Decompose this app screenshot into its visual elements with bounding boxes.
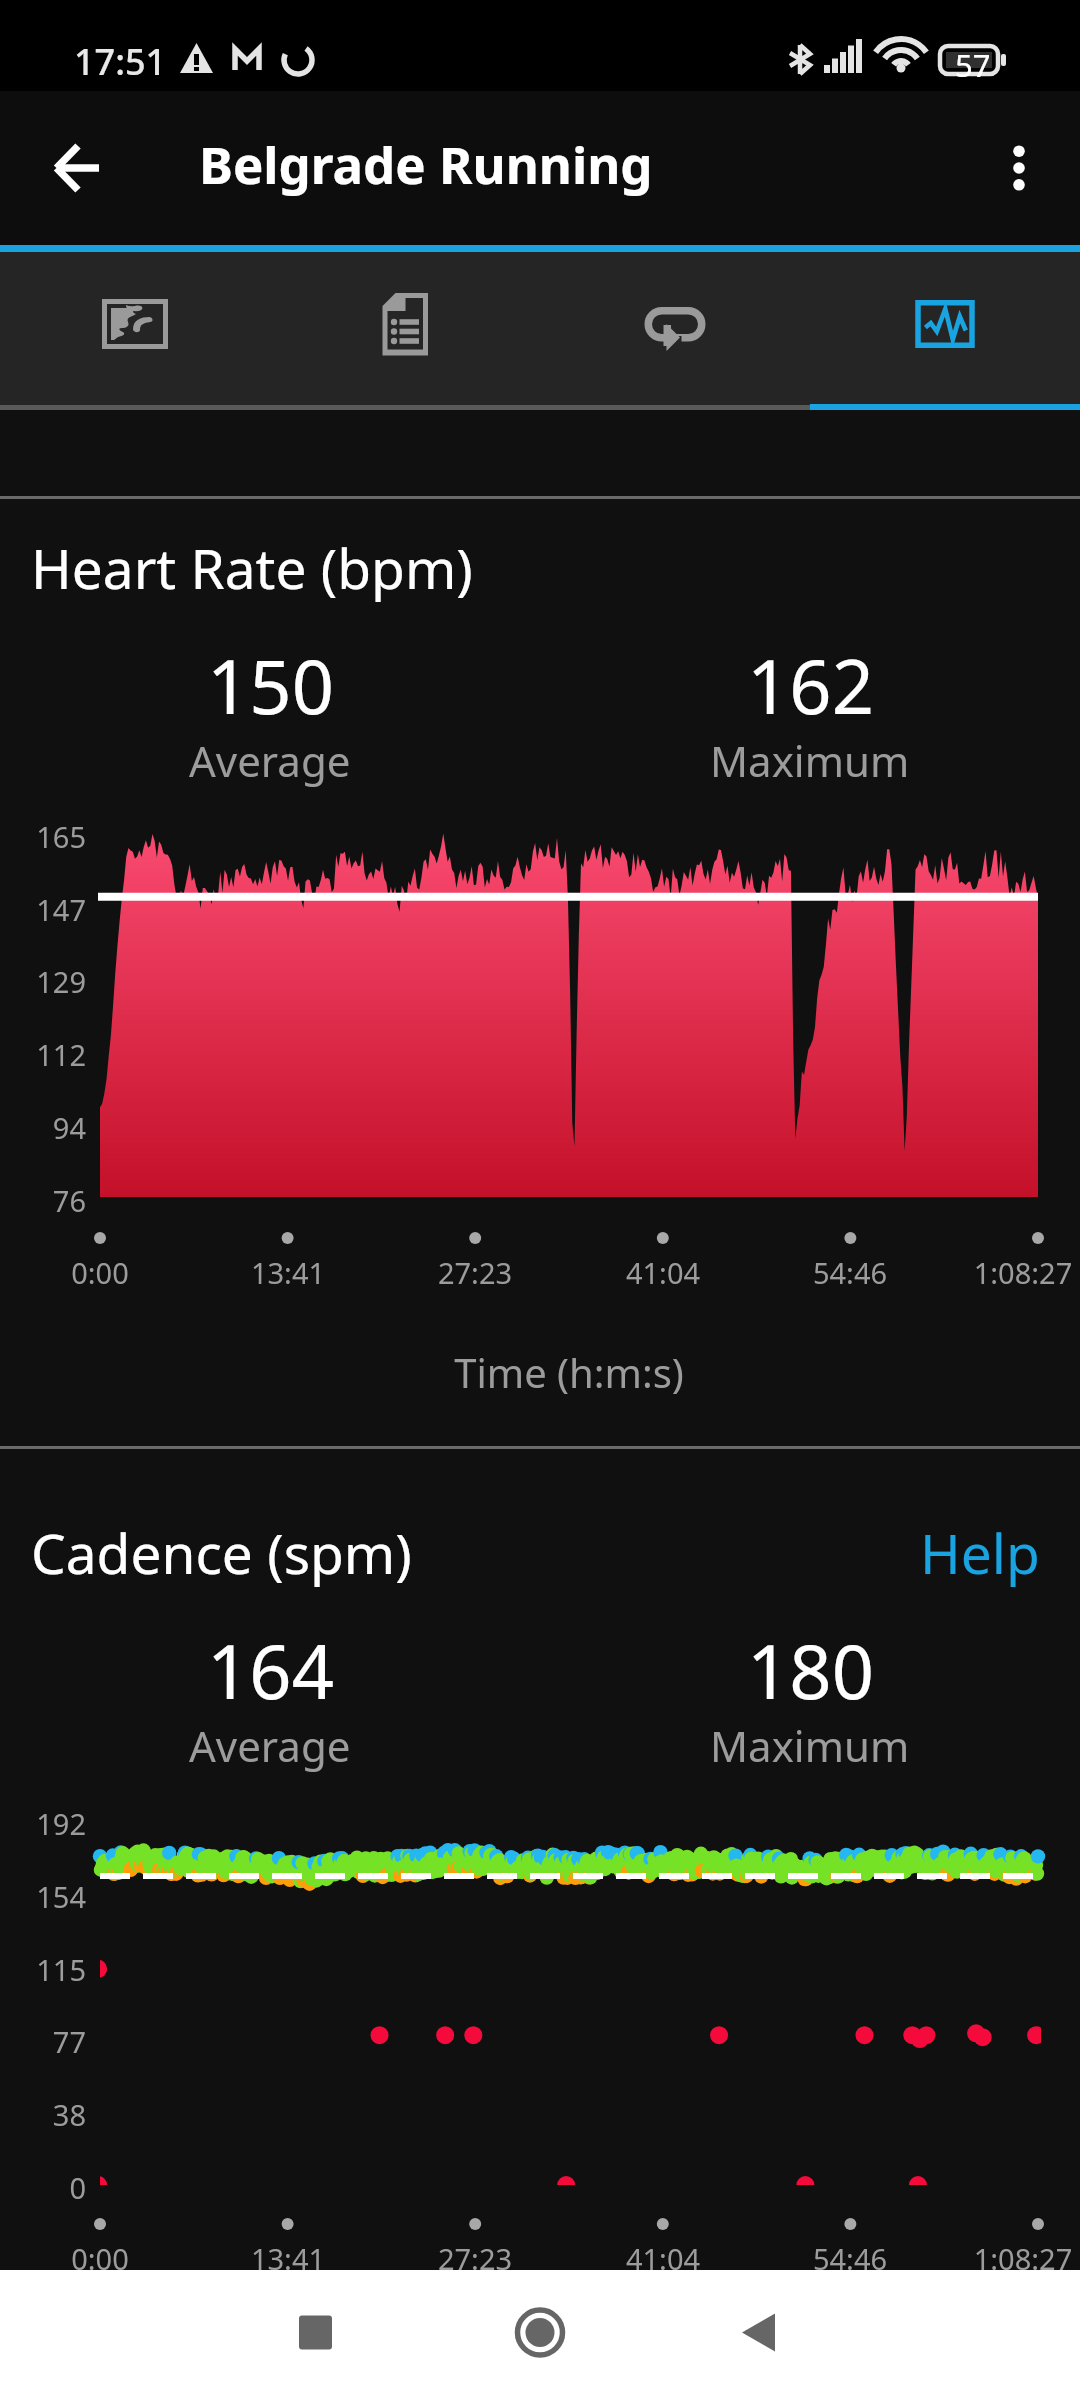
staticText: 154	[0, 1877, 86, 1916]
staticText: 57	[955, 44, 991, 86]
staticText: 112	[0, 1035, 86, 1074]
staticText: 150	[207, 635, 334, 736]
staticText: Heart Rate (bpm)	[31, 530, 473, 605]
button[interactable]: Home	[460, 2288, 620, 2400]
staticText: Average	[189, 1717, 351, 1774]
button[interactable]: Charts	[810, 252, 1080, 342]
button[interactable]: Map	[0, 252, 270, 342]
button[interactable]: Back	[680, 2288, 840, 2400]
staticText: 54:46	[700, 2239, 1000, 2278]
staticText: 41:04	[513, 2239, 813, 2278]
staticText: 147	[0, 890, 86, 929]
staticText: Average	[189, 732, 351, 789]
button[interactable]: Back	[22, 113, 132, 223]
staticText: 164	[207, 1620, 334, 1721]
staticText: 0:00	[0, 1253, 250, 1292]
staticText: 192	[0, 1804, 86, 1843]
staticText: 129	[0, 962, 86, 1001]
staticText: 180	[747, 1620, 874, 1721]
button[interactable]: Recent apps	[235, 2288, 395, 2400]
staticText: Help	[920, 1515, 1040, 1590]
staticText: 0:00	[0, 2239, 250, 2278]
staticText: 115	[0, 1950, 86, 1989]
staticText: 162	[747, 635, 874, 736]
staticText: 13:41	[138, 2239, 438, 2278]
button[interactable]: Details	[270, 252, 540, 342]
button[interactable]: More options	[962, 113, 1072, 223]
staticText: Belgrade Running	[199, 129, 653, 198]
staticText: 17:51	[74, 37, 167, 86]
staticText: 165	[0, 817, 86, 856]
staticText: 27:23	[325, 1253, 625, 1292]
button[interactable]: Help	[920, 1515, 1040, 1590]
staticText: 77	[0, 2022, 86, 2061]
staticText: 38	[0, 2095, 86, 2134]
staticText: 0	[0, 2168, 86, 2207]
staticText: Maximum	[710, 1717, 910, 1774]
staticText: 1:08:27	[873, 1253, 1080, 1292]
staticText: 76	[0, 1181, 86, 1220]
staticText: 13:41	[138, 1253, 438, 1292]
staticText: Cadence (spm)	[31, 1515, 412, 1590]
staticText: Time (h:m:s)	[100, 1345, 1038, 1399]
staticText: 1:08:27	[873, 2239, 1080, 2278]
staticText: 54:46	[700, 1253, 1000, 1292]
staticText: 27:23	[325, 2239, 625, 2278]
button[interactable]: Laps	[540, 252, 810, 342]
staticText: Maximum	[710, 732, 910, 789]
staticText: 41:04	[513, 1253, 813, 1292]
staticText: 94	[0, 1108, 86, 1147]
